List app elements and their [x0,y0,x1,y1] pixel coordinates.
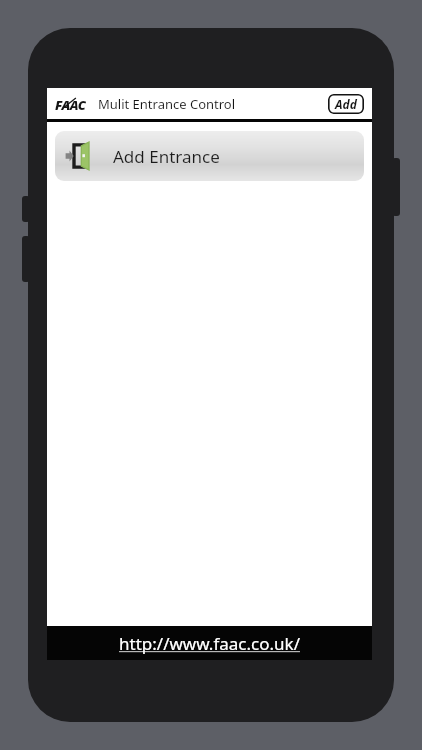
staticText: Add [335,96,357,112]
staticText: http://www.faac.co.uk/ [119,632,300,655]
staticText: FAAC [55,96,86,112]
button[interactable]: http://www.faac.co.uk/ [47,626,372,660]
other: Add Entrance [65,141,95,171]
button[interactable]: Add [328,94,364,114]
staticText: Mulit Entrance Control [98,95,236,113]
button[interactable]: Add Entrance [55,131,364,181]
staticText: Add Entrance [113,145,220,168]
